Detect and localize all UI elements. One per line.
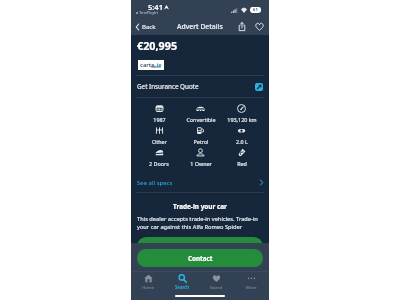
staticText: More: [246, 284, 257, 290]
staticText: 193,120 km: [227, 116, 257, 123]
button[interactable]: Contact: [137, 249, 263, 267]
staticText: Convertible: [186, 116, 216, 123]
staticText: Contact: [188, 254, 213, 263]
staticText: Saved: [210, 284, 223, 290]
staticText: Red: [237, 160, 247, 167]
staticText: motors: [151, 65, 161, 69]
staticText: See all specs: [137, 179, 173, 187]
staticText: Trade-in your car: [131, 202, 269, 211]
staticText: Home: [142, 284, 155, 290]
staticText: 61: [253, 7, 258, 13]
staticText: 2 Doors: [149, 160, 169, 167]
staticText: Get Insurance Quote: [137, 82, 199, 91]
button[interactable]: More: [234, 274, 269, 290]
staticText: Petrol: [193, 138, 209, 145]
button[interactable]: Home: [131, 274, 165, 290]
button[interactable]: Search: [165, 274, 199, 290]
staticText: .ie: [155, 61, 162, 69]
button[interactable]: See all specs: [131, 173, 269, 192]
staticText: 1 Owner: [190, 160, 212, 167]
button[interactable]: Back: [131, 21, 160, 33]
staticText: Search: [175, 284, 190, 290]
staticText: 2.0 L: [236, 138, 248, 145]
staticText: €20,995: [137, 38, 178, 53]
staticText: 5:41: [148, 2, 163, 12]
staticText: Other: [152, 138, 167, 145]
button[interactable]: Get a valuation: [137, 237, 263, 255]
staticText: Back: [142, 23, 156, 31]
button[interactable]: Get Insurance Quote: [131, 76, 269, 97]
staticText: TestFlight: [139, 10, 158, 16]
staticText: This dealer accepts trade-in vehicles. T…: [137, 215, 264, 231]
staticText: carte: [140, 61, 155, 69]
button[interactable]: Share: [235, 20, 248, 33]
staticText: Advert Details: [177, 22, 223, 31]
button[interactable]: Save: [253, 20, 266, 33]
button[interactable]: Saved: [199, 274, 234, 290]
staticText: 1987: [153, 116, 166, 123]
